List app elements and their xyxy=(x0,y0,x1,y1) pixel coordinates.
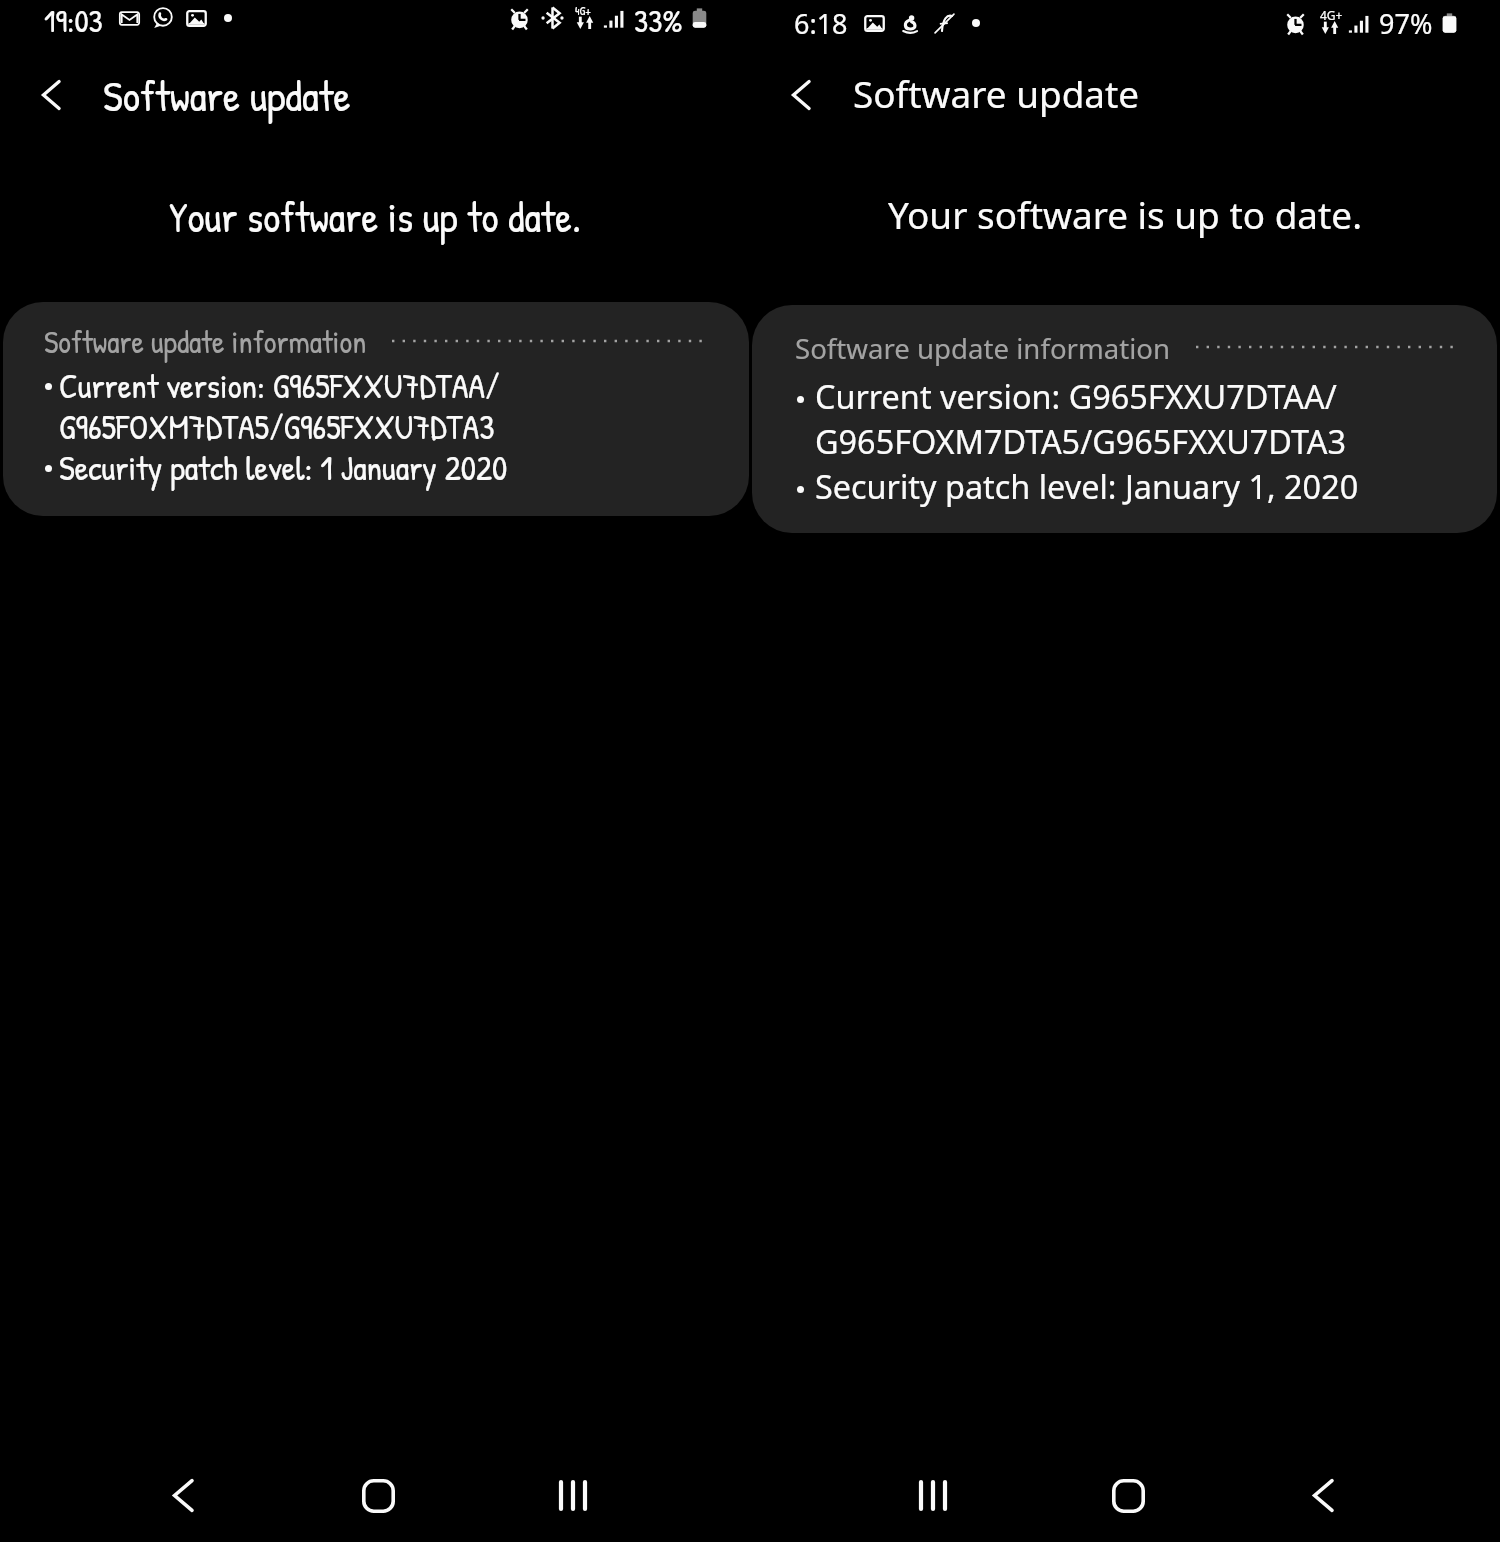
button[interactable]: Recent apps xyxy=(885,1449,981,1542)
staticText: Current version: G965FXXU7DTAA/ xyxy=(815,374,1337,418)
staticText: G965FOXM7DTA5/G965FXXU7DTA3 xyxy=(815,419,1346,463)
staticText: 4G+ xyxy=(1320,7,1343,23)
staticText: Current version: G965FXXU7DTAA/ xyxy=(59,362,500,408)
staticText: Your software is up to date. xyxy=(0,188,750,245)
staticText: Your software is up to date. xyxy=(750,190,1500,240)
button[interactable]: Home xyxy=(330,1449,426,1542)
staticText: Security patch level: 1 January 2020 xyxy=(59,444,508,490)
staticText: Software update information xyxy=(44,320,367,362)
button[interactable]: Home xyxy=(1080,1449,1176,1542)
staticText: G965FOXM7DTA5/G965FXXU7DTA3 xyxy=(59,403,495,449)
button[interactable]: Software update information xyxy=(752,305,1497,533)
staticText: Software update xyxy=(853,69,1140,119)
button[interactable]: Software update information xyxy=(3,302,749,516)
staticText: 19:03 xyxy=(44,0,103,37)
staticText: Security patch level: January 1, 2020 xyxy=(815,464,1359,508)
button[interactable]: Navigate up xyxy=(771,70,831,120)
button[interactable]: Back xyxy=(135,1449,231,1542)
button[interactable]: Back xyxy=(1275,1449,1371,1542)
button[interactable]: Recent apps xyxy=(525,1449,621,1542)
staticText: 4G+ xyxy=(575,2,592,18)
staticText: 97% xyxy=(1379,5,1433,42)
staticText: 33% xyxy=(634,0,683,37)
staticText: Software update information xyxy=(795,329,1171,367)
staticText: 6:18 xyxy=(794,5,848,42)
button[interactable]: Navigate up xyxy=(21,70,81,120)
staticText: Software update xyxy=(103,66,351,124)
